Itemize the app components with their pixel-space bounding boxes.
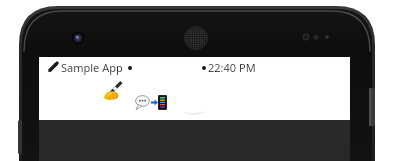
button[interactable]: Writing hand [103, 81, 123, 101]
button[interactable]: 22:40 PM [202, 60, 256, 75]
button[interactable]: Message [135, 95, 167, 110]
other: Send to device [151, 98, 158, 107]
other: Edit [47, 62, 58, 73]
staticText: Sample App [61, 60, 123, 75]
other: Message [135, 95, 151, 110]
button[interactable]: Edit [47, 59, 132, 76]
staticText: 22:40 PM [208, 60, 256, 75]
other: Device [158, 95, 167, 110]
